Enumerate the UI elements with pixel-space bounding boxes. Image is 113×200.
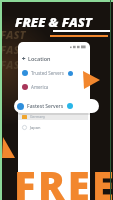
staticText: Fastest Servers — [27, 103, 64, 110]
staticText: America — [31, 84, 49, 90]
button[interactable]: Fastest Servers — [17, 99, 99, 113]
staticText: Location — [28, 55, 51, 62]
other: Back — [21, 56, 26, 61]
button[interactable]: Japan — [22, 122, 90, 132]
staticText: Japan — [30, 125, 41, 130]
button[interactable]: Trusted Servers — [22, 67, 90, 79]
staticText: FAST — [0, 57, 26, 72]
staticText: Trusted Servers — [31, 70, 64, 76]
staticText: FAST — [0, 42, 26, 57]
staticText: FAST — [0, 27, 26, 42]
staticText: FREE & FAST — [15, 13, 92, 31]
button[interactable]: Germany — [22, 113, 88, 120]
button[interactable]: America — [22, 81, 90, 93]
button[interactable]: Back — [21, 53, 90, 63]
staticText: FREE — [14, 158, 113, 200]
staticText: Germany — [30, 114, 46, 119]
